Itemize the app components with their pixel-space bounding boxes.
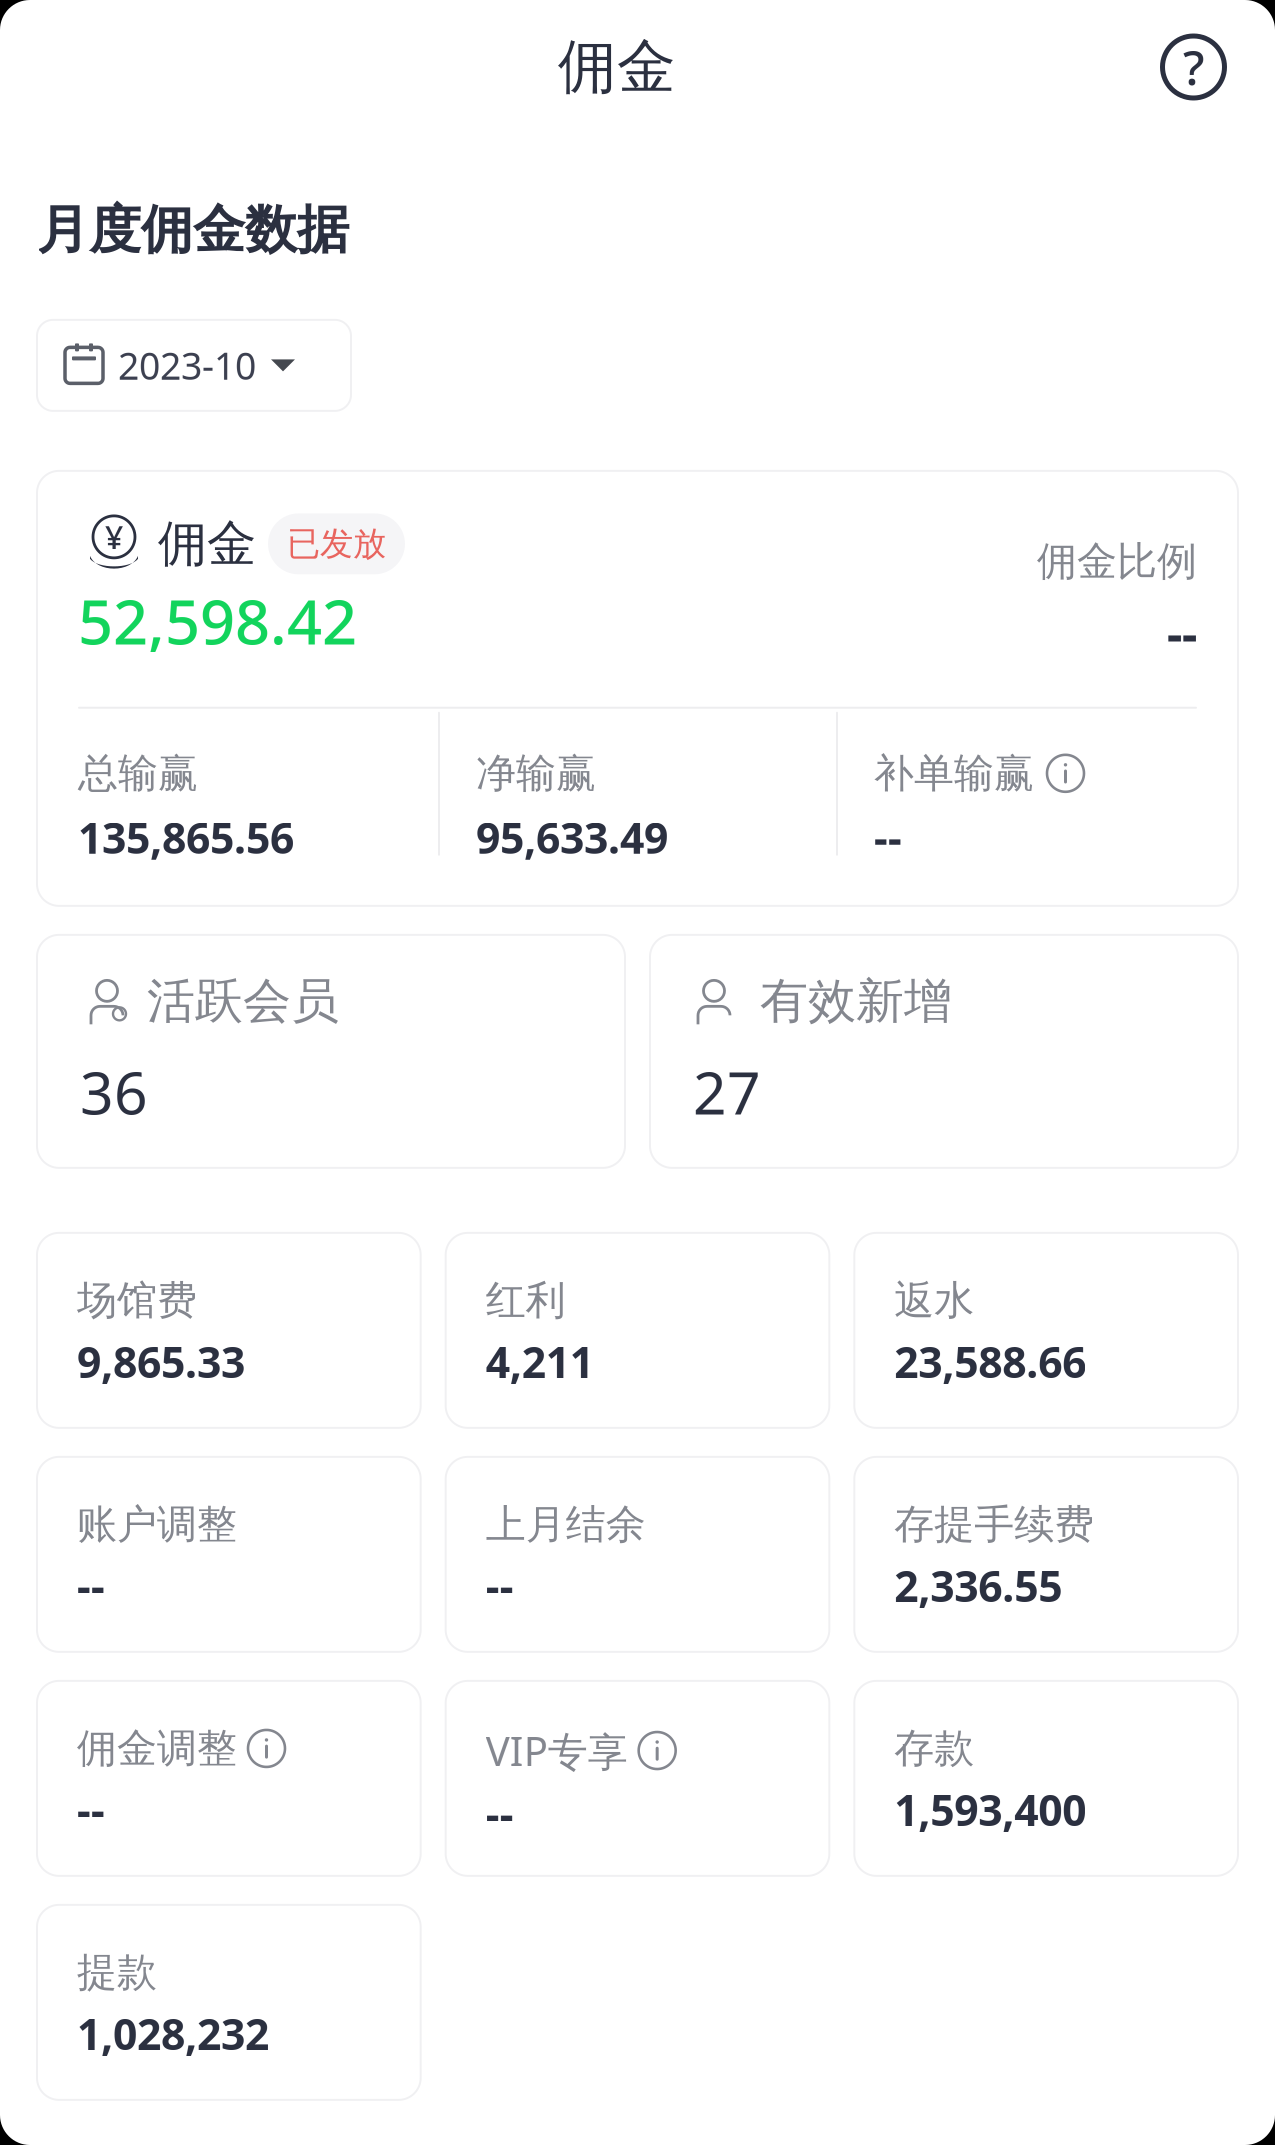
staticText: 95,633.49 [476, 809, 668, 866]
staticText: 有效新增 [760, 972, 952, 1031]
staticText: 净输赢 [476, 749, 596, 798]
staticText: ¥ [105, 516, 123, 558]
staticText: 52,598.42 [78, 580, 357, 661]
staticText: 2,336.55 [894, 1557, 1062, 1614]
staticText: 已发放 [287, 523, 386, 564]
staticText: 佣金调整 [77, 1724, 237, 1773]
staticText: 佣金 [558, 31, 676, 103]
staticText: 27 [693, 1053, 761, 1131]
button[interactable]: 上月结余 [446, 1457, 829, 1652]
button[interactable]: 提款 [37, 1905, 421, 2100]
staticText: 存提手续费 [894, 1500, 1094, 1549]
staticText: -- [77, 1781, 105, 1838]
button[interactable]: 活跃会员 [37, 935, 625, 1168]
staticText: -- [1167, 601, 1197, 665]
staticText: 活跃会员 [147, 972, 339, 1031]
staticText: 1,028,232 [77, 2005, 269, 2062]
button[interactable]: 场馆费 [37, 1233, 421, 1428]
button[interactable]: 2023-10 [37, 320, 351, 411]
button[interactable]: VIP专享 [446, 1681, 829, 1876]
staticText: 提款 [77, 1948, 157, 1997]
button[interactable]: 存提手续费 [854, 1457, 1238, 1652]
staticText: 佣金 [158, 514, 256, 574]
staticText: -- [77, 1557, 105, 1614]
staticText: 135,865.56 [78, 809, 294, 866]
staticText: 9,865.33 [77, 1333, 245, 1390]
button[interactable]: 存款 [854, 1681, 1238, 1876]
staticText: 存款 [894, 1724, 974, 1773]
staticText: 返水 [894, 1276, 974, 1325]
staticText: 36 [80, 1053, 148, 1131]
staticText: 上月结余 [486, 1500, 646, 1549]
staticText: 月度佣金数据 [37, 198, 349, 262]
staticText: VIP专享 [486, 1724, 628, 1777]
staticText: -- [874, 809, 902, 866]
button[interactable]: 帮助 [1160, 33, 1227, 100]
button[interactable]: 有效新增 [650, 935, 1238, 1168]
staticText: -- [486, 1785, 514, 1842]
staticText: 账户调整 [77, 1500, 237, 1549]
staticText: ? [1183, 35, 1204, 99]
staticText: 红利 [486, 1276, 566, 1325]
staticText: -- [486, 1557, 514, 1614]
staticText: 场馆费 [77, 1276, 197, 1325]
staticText: 佣金比例 [1037, 537, 1197, 586]
button[interactable]: 红利 [446, 1233, 829, 1428]
staticText: 4,211 [486, 1333, 594, 1390]
button[interactable]: 佣金调整 [37, 1681, 421, 1876]
staticText: 补单输赢 [874, 749, 1034, 798]
button[interactable]: 返水 [854, 1233, 1238, 1428]
staticText: 2023-10 [118, 341, 256, 390]
button[interactable]: 账户调整 [37, 1457, 421, 1652]
staticText: 总输赢 [78, 749, 198, 798]
staticText: 23,588.66 [894, 1333, 1086, 1390]
staticText: 1,593,400 [894, 1781, 1086, 1838]
